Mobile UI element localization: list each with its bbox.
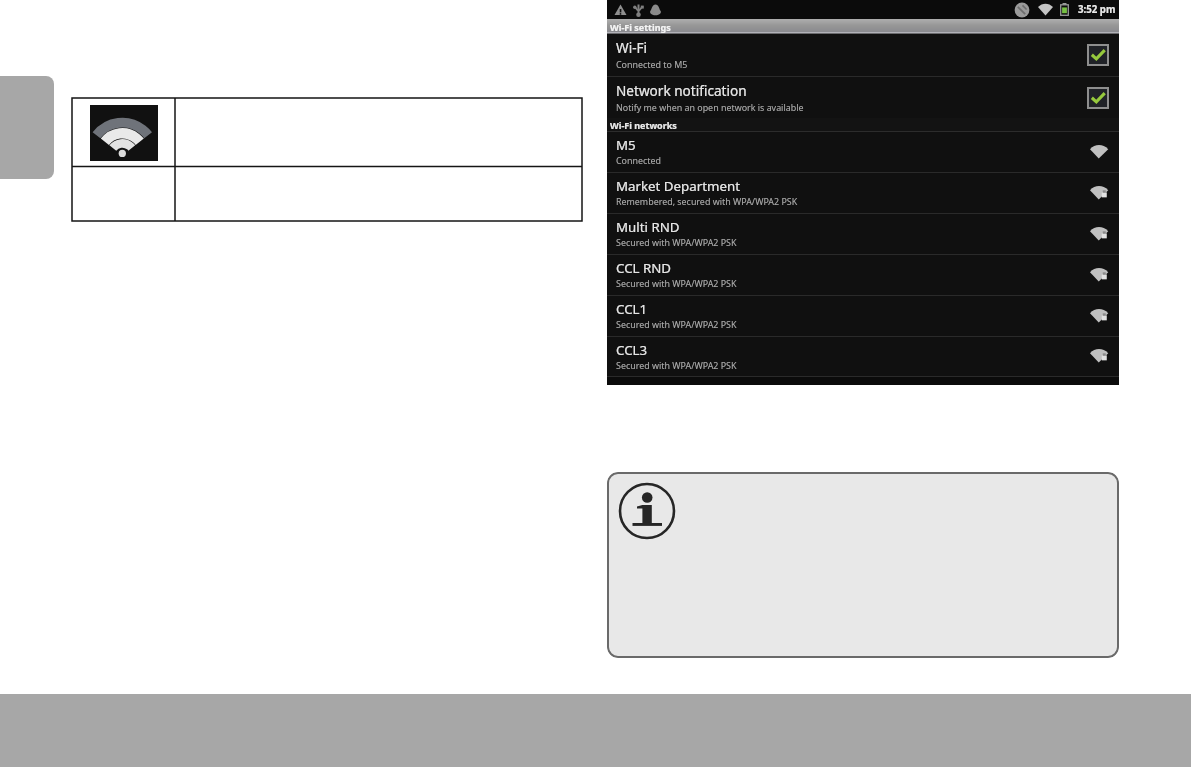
staticText: CCL3 [616,341,648,359]
other: Secured network [1090,226,1109,243]
staticText: 3:52 pm [1078,3,1116,16]
staticText: Network notification [616,81,747,100]
other: Secured network [1090,267,1109,284]
other: Secured network [1090,308,1109,325]
button[interactable]: Network notification [607,77,1119,118]
staticText: Market Department [616,177,740,195]
staticText: Remembered, secured with WPA/WPA2 PSK [616,195,798,207]
button[interactable]: M5 [607,132,1119,172]
staticText: Wi-Fi settings [610,21,671,33]
staticText: M5 [616,136,636,154]
staticText: Secured with WPA/WPA2 PSK [616,359,737,371]
staticText: Notify me when an open network is availa… [616,101,804,113]
staticText: CCL RND [616,259,672,277]
button[interactable]: CCL RND [607,255,1119,295]
other: Secured network [1090,185,1109,202]
button[interactable]: Wi-Fi checkbox, checked [1087,44,1109,66]
staticText: Connected [616,154,661,166]
staticText: Multi RND [616,218,680,236]
staticText: Secured with WPA/WPA2 PSK [616,236,737,248]
button[interactable]: Wi-Fi [607,34,1119,76]
staticText: Secured with WPA/WPA2 PSK [616,318,737,330]
other: Open network [1090,144,1109,161]
button[interactable]: Multi RND [607,214,1119,254]
staticText: Connected to M5 [616,58,688,70]
button[interactable]: CCL3 [607,337,1119,376]
other: Secured network [1090,348,1109,365]
button[interactable]: Market Department [607,173,1119,213]
staticText: Wi-Fi [616,38,648,57]
staticText: Wi-Fi networks [610,119,677,131]
staticText: Secured with WPA/WPA2 PSK [616,277,737,289]
staticText: CCL1 [616,300,648,318]
button[interactable]: Network notification checkbox, checked [1087,87,1109,109]
button[interactable]: CCL1 [607,296,1119,336]
